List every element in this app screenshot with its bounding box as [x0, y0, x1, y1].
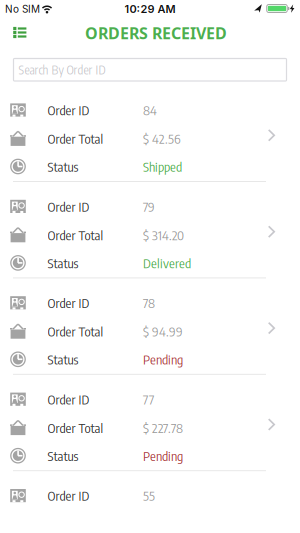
- staticText: ORDERS RECEIVED: [85, 22, 227, 44]
- staticText: Status: [47, 255, 78, 271]
- button[interactable]: Order ID: [0, 86, 300, 182]
- staticText: No SIM: [5, 3, 40, 15]
- staticText: Delivered: [143, 255, 191, 271]
- staticText: Search By Order ID: [18, 62, 105, 77]
- staticText: Shipped: [143, 158, 182, 175]
- staticText: 77: [143, 391, 154, 407]
- staticText: Status: [47, 448, 78, 464]
- staticText: 10:29 AM: [124, 2, 175, 16]
- button[interactable]: Menu: [9, 22, 31, 42]
- staticText: Order ID: [47, 198, 89, 214]
- staticText: Order ID: [47, 295, 89, 311]
- staticText: Pending: [143, 448, 183, 464]
- staticText: Status: [47, 351, 78, 367]
- staticText: 84: [143, 102, 157, 118]
- staticText: Order Total: [47, 420, 103, 436]
- button[interactable]: Order ID: [0, 471, 300, 533]
- staticText: Order ID: [47, 102, 89, 118]
- staticText: Order ID: [47, 487, 89, 504]
- staticText: 79: [143, 198, 155, 214]
- staticText: Order ID: [47, 391, 89, 407]
- staticText: $ 42.56: [143, 130, 181, 147]
- button[interactable]: Order ID: [0, 278, 300, 375]
- staticText: $ 227.78: [143, 420, 183, 436]
- staticText: 55: [143, 487, 155, 504]
- staticText: $ 314.20: [143, 227, 184, 243]
- staticText: Order Total: [47, 130, 103, 147]
- button[interactable]: Order ID: [0, 375, 300, 471]
- staticText: Status: [47, 158, 78, 175]
- staticText: Order Total: [47, 323, 103, 339]
- staticText: $ 94.99: [143, 323, 183, 339]
- button[interactable]: Order ID: [0, 182, 300, 278]
- staticText: 78: [143, 295, 155, 311]
- button[interactable]: Search By Order ID: [13, 58, 286, 81]
- staticText: Pending: [143, 351, 183, 367]
- staticText: Order Total: [47, 227, 103, 243]
